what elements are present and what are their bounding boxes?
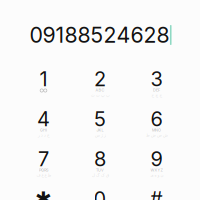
- staticText: ABC: [95, 88, 104, 92]
- staticText: ق ک گ ل: [91, 173, 108, 177]
- button[interactable]: 5: [0, 0, 200, 200]
- staticText: MNO: [152, 128, 161, 132]
- button[interactable]: 8: [0, 0, 200, 200]
- staticText: ش ص ض ط: [145, 133, 167, 137]
- button[interactable]: 4: [0, 0, 200, 200]
- staticText: 8: [94, 147, 106, 171]
- button[interactable]: 1: [0, 0, 200, 200]
- staticText: ظ ع غ ف: [36, 173, 51, 177]
- button[interactable]: 7: [0, 0, 200, 200]
- staticText: ✱: [35, 187, 52, 200]
- staticText: 09188524628: [29, 22, 169, 48]
- button[interactable]: 09188524628: [29, 22, 172, 48]
- button[interactable]: 3: [0, 0, 200, 200]
- staticText: 1: [39, 67, 47, 91]
- staticText: 7: [38, 147, 49, 171]
- button[interactable]: 0: [0, 0, 200, 200]
- staticText: 4: [37, 107, 50, 131]
- staticText: PQRS: [39, 168, 48, 172]
- staticText: TUV: [96, 168, 104, 172]
- staticText: 0: [93, 187, 106, 200]
- button[interactable]: 2: [0, 0, 200, 200]
- staticText: ز ژ س: [94, 133, 105, 137]
- staticText: ن و ه ی: [150, 173, 163, 177]
- staticText: #: [150, 187, 163, 200]
- button[interactable]: #: [0, 0, 200, 200]
- staticText: GHI: [40, 128, 47, 132]
- staticText: JKL: [96, 128, 103, 132]
- staticText: 2: [94, 67, 106, 91]
- staticText: ج چ ح: [151, 93, 162, 97]
- staticText: 3: [150, 67, 162, 91]
- staticText: خ د ذ ر: [37, 133, 49, 137]
- staticText: WXYZ: [150, 168, 162, 172]
- staticText: 6: [150, 107, 162, 131]
- button[interactable]: ✱: [0, 0, 200, 200]
- button[interactable]: 9: [0, 0, 200, 200]
- staticText: ب پ ت ث: [90, 93, 109, 97]
- staticText: DEF: [153, 88, 160, 92]
- staticText: 9: [150, 147, 162, 171]
- staticText: 5: [94, 107, 106, 131]
- button[interactable]: 6: [0, 0, 200, 200]
